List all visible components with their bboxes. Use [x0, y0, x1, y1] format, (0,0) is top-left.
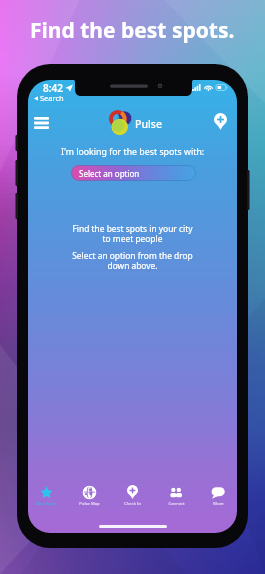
- button[interactable]: More: [198, 485, 237, 515]
- staticText: 8:42: [43, 81, 63, 95]
- staticText: Best Spots: [36, 501, 57, 507]
- staticText: Find the best spots.: [30, 16, 235, 45]
- staticText: Check In: [124, 501, 141, 507]
- button[interactable]: Connect: [156, 485, 196, 515]
- staticText: Pulse: [135, 117, 162, 131]
- staticText: Find the best spots in your city to meet…: [72, 223, 193, 245]
- button[interactable]: Menu: [31, 113, 51, 133]
- staticText: I'm looking for the best spots with:: [61, 146, 205, 158]
- staticText: Select an option: [79, 168, 140, 179]
- button[interactable]: Pulse Map: [69, 485, 109, 515]
- staticText: Search: [40, 93, 64, 103]
- staticText: Select an option from the drop down abov…: [72, 250, 193, 272]
- staticText: Connect: [168, 501, 185, 507]
- staticText: Pulse Map: [79, 501, 100, 507]
- button[interactable]: Best Spots: [28, 485, 66, 515]
- button[interactable]: Select an option: [71, 165, 196, 181]
- staticText: More: [213, 501, 224, 507]
- button[interactable]: Check In: [112, 485, 152, 515]
- button[interactable]: Add place: [210, 111, 230, 131]
